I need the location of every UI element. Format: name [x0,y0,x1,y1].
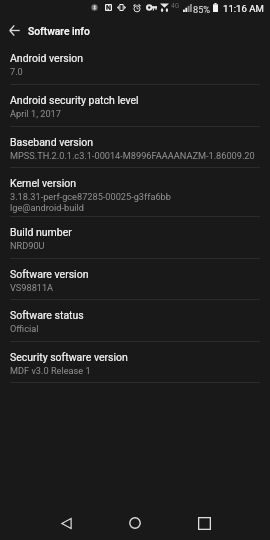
button[interactable]: Navigate up [2,18,26,42]
staticText: VS98811A [10,282,54,293]
button[interactable]: Software status [0,300,270,342]
staticText: lge@android-build [10,202,84,213]
button[interactable]: Kernel version [0,168,270,217]
button[interactable]: Security software version [0,342,270,383]
button[interactable]: Software version [0,259,270,300]
staticText: MDF v3.0 Release 1 [10,365,91,376]
staticText: NRD90U [10,240,45,251]
button[interactable]: Baseband version [0,127,270,168]
staticText: Android security patch level [10,94,139,106]
staticText: Software status [10,309,84,321]
button[interactable]: Back [50,507,82,539]
staticText: Security software version [10,351,128,363]
staticText: Build number [10,226,72,238]
button[interactable]: Build number [0,217,270,259]
staticText: April 1, 2017 [10,108,61,119]
button[interactable]: Home [119,507,151,539]
staticText: Software info [28,25,90,37]
staticText: Software version [10,268,89,280]
staticText: 3.18.31-perf-gce87285-00025-g3ffa6bb [10,191,171,202]
staticText: 85% [193,4,211,15]
button[interactable]: Android security patch level [0,85,270,127]
staticText: Android version [10,52,83,64]
staticText: Kernel version [10,177,77,189]
staticText: 11:16 AM [223,3,264,14]
staticText: Baseband version [10,136,94,148]
staticText: MPSS.TH.2.0.1.c3.1-00014-M8996FAAAANAZM-… [10,150,255,161]
staticText: Official [10,323,39,334]
button[interactable]: Recent apps [188,507,220,539]
staticText: 7.0 [10,66,23,77]
staticText: 4G [171,2,180,10]
button[interactable]: Android version [0,43,270,85]
